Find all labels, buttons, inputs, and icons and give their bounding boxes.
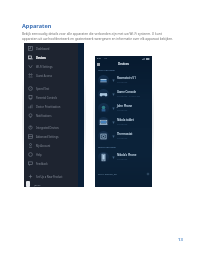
staticText: Bekijk eenvoudig details voor alle appar…	[22, 32, 174, 41]
staticText: Dashboard	[36, 47, 50, 51]
staticText: Devices	[36, 56, 46, 60]
button[interactable]: Integrated Devices	[24, 123, 78, 132]
button[interactable]: My Account	[24, 141, 78, 150]
staticText: Devices	[118, 62, 130, 66]
staticText: Advanced Settings	[36, 135, 59, 139]
button[interactable]: Roomstat v 51	[95, 73, 152, 87]
button[interactable]: Device Prioritization	[24, 102, 78, 111]
staticText: My Account	[36, 144, 51, 148]
staticText: Apparaten	[22, 22, 52, 30]
button[interactable]: Set Up a New Product	[24, 172, 78, 181]
staticText: Connected	[117, 137, 128, 140]
staticText: GUEST NETWORK	[98, 146, 116, 149]
staticText: 13	[178, 237, 183, 243]
staticText: Connected	[117, 109, 128, 112]
staticText: Roomstat v 51	[117, 76, 136, 80]
staticText: Nikola's Phone	[117, 153, 137, 157]
staticText: Jenny	[34, 183, 41, 186]
button[interactable]: Wi-Fi: TestNet_5G	[95, 171, 152, 187]
staticText: Connected	[117, 81, 128, 84]
staticText: Notifications	[36, 114, 52, 118]
staticText: Set Up a New Product	[36, 175, 63, 179]
button[interactable]: Nikola tablet	[95, 115, 152, 129]
staticText: Speed Test	[36, 87, 50, 91]
button[interactable]: Devices	[24, 53, 78, 62]
button[interactable]: Nikola's Phone	[95, 150, 152, 164]
staticText: Feedback	[36, 162, 48, 166]
button[interactable]: Thermostat	[95, 129, 152, 143]
staticText: John Phone	[117, 104, 133, 108]
button[interactable]: Jenny	[24, 181, 78, 187]
button[interactable]: Game Console	[95, 87, 152, 101]
button[interactable]: Parental Controls	[24, 93, 78, 102]
button[interactable]: Notifications	[24, 111, 78, 120]
staticText: Connected	[117, 158, 128, 161]
staticText: LTE	[104, 57, 108, 60]
button[interactable]: Wi-Fi Settings	[24, 62, 78, 71]
button[interactable]: Speed Test	[24, 84, 78, 93]
staticText: Game Console	[117, 90, 137, 94]
staticText: 9:41	[97, 57, 101, 60]
staticText: Connected - 3 hours ago	[117, 95, 141, 98]
staticText: Device Prioritization	[36, 105, 61, 109]
button[interactable]: Dashboard	[24, 44, 78, 53]
staticText: Connected	[117, 123, 128, 126]
button[interactable]: John Phone	[95, 101, 152, 115]
staticText: Integrated Devices	[36, 126, 59, 130]
button[interactable]: Help	[24, 150, 78, 159]
staticText: Wi-Fi Settings	[36, 65, 53, 69]
staticText: Parental Controls	[36, 96, 58, 100]
staticText: MAIN NETWORK	[98, 69, 115, 72]
button[interactable]: Guest Access	[24, 71, 78, 80]
staticText: Nikola tablet	[117, 118, 134, 122]
staticText: Wi-Fi: TestNet_5G	[98, 173, 117, 176]
staticText: Thermostat	[117, 132, 133, 136]
button[interactable]: Advanced Settings	[24, 132, 78, 141]
staticText: Guest Access	[36, 74, 52, 78]
staticText: Help	[36, 153, 42, 157]
button[interactable]: Feedback	[24, 159, 78, 168]
